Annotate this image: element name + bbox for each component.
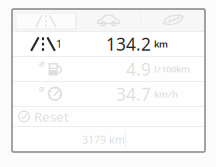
staticText: km/h (154, 88, 178, 100)
button[interactable]: 34.7 (12, 82, 205, 106)
button[interactable]: Trip computer (12, 9, 76, 31)
staticText: Reset (34, 108, 69, 125)
staticText: 34.7 (116, 82, 151, 105)
staticText: 134.2 (106, 32, 151, 55)
staticText: 3179 km (82, 132, 125, 147)
button[interactable]: 1 (12, 32, 205, 56)
button[interactable]: Eco driving (141, 9, 205, 31)
staticText: km (154, 38, 168, 50)
staticText: l/100km (154, 63, 190, 75)
button[interactable]: Reset (12, 107, 205, 126)
button[interactable]: 4.9 (12, 57, 205, 81)
button[interactable]: Vehicle status (77, 9, 140, 31)
staticText: 4.9 (126, 57, 151, 80)
staticText: 1 (56, 36, 62, 51)
